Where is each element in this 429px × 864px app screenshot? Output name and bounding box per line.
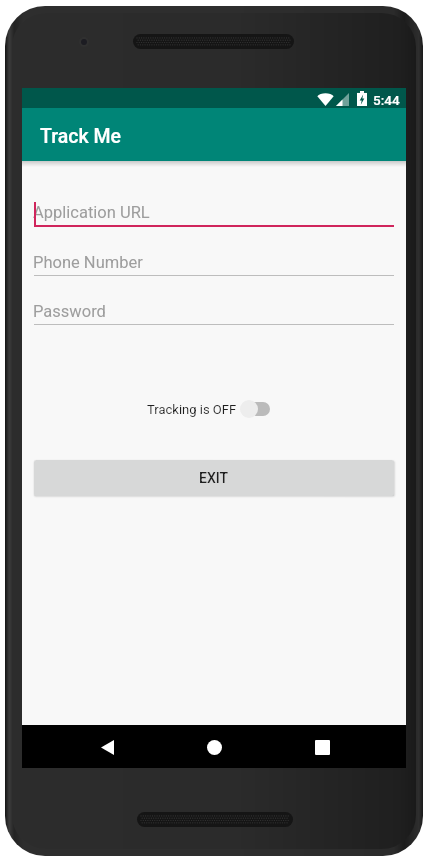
button[interactable]: Password (34, 302, 394, 342)
staticText: Tracking is OFF (147, 402, 237, 417)
button[interactable]: Tracking toggle (240, 398, 270, 420)
button[interactable]: Back (88, 728, 126, 766)
staticText: Track Me (40, 125, 121, 148)
button[interactable]: Application URL (34, 203, 394, 243)
staticText: 5:44 (373, 92, 400, 108)
button[interactable]: Tracking is OFF (147, 397, 270, 421)
button[interactable]: Phone Number (34, 253, 394, 293)
button[interactable]: Home (195, 728, 233, 766)
button[interactable]: Recent apps (303, 728, 341, 766)
button[interactable]: EXIT (34, 460, 394, 496)
staticText: Application URL (33, 203, 150, 222)
staticText: Password (33, 302, 106, 321)
staticText: Phone Number (33, 253, 143, 272)
staticText: EXIT (199, 470, 229, 486)
